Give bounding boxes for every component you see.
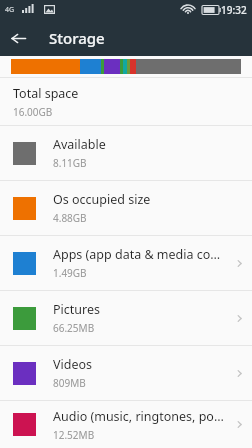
staticText: 1.49GB (53, 266, 87, 280)
button[interactable]: Available (0, 126, 252, 180)
button[interactable]: Audio (music, ringtones, podca.. (0, 401, 252, 448)
button[interactable]: Total space (0, 78, 252, 125)
staticText: Total space (13, 85, 79, 102)
staticText: Apps (app data & media conten.. (53, 246, 226, 263)
staticText: 66.25MB (53, 321, 95, 335)
button[interactable]: Apps (app data & media conten.. (0, 236, 252, 290)
staticText: 4.88GB (53, 211, 87, 225)
staticText: 16.00GB (13, 105, 53, 119)
staticText: 12.52MB (53, 428, 95, 442)
staticText: Available (53, 136, 106, 153)
staticText: 4G (5, 5, 15, 15)
staticText: Videos (53, 356, 93, 373)
staticText: Storage (49, 28, 105, 48)
staticText: 809MB (53, 376, 86, 390)
button[interactable]: Videos (0, 346, 252, 400)
button[interactable]: Back (0, 20, 36, 56)
staticText: Pictures (53, 301, 100, 318)
staticText: 19:32 (221, 3, 247, 17)
button[interactable]: Pictures (0, 291, 252, 345)
staticText: Os occupied size (53, 191, 151, 208)
staticText: 8.11GB (53, 156, 87, 170)
staticText: Audio (music, ringtones, podca.. (53, 408, 226, 425)
button[interactable]: Os occupied size (0, 181, 252, 235)
